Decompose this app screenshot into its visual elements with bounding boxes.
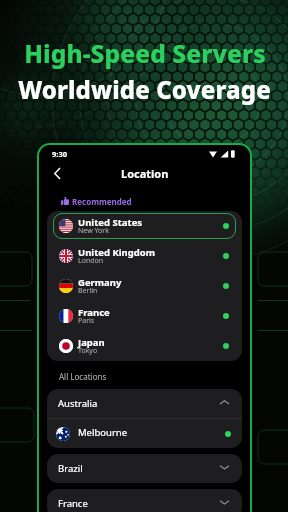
button[interactable]: Brazil: [47, 454, 242, 483]
staticText: Australia: [58, 397, 98, 410]
button[interactable]: France: [53, 303, 236, 329]
staticText: Japan: [78, 336, 105, 349]
staticText: France: [78, 306, 110, 319]
button[interactable]: Back: [48, 164, 66, 182]
staticText: High-Speed Servers: [24, 37, 266, 70]
staticText: Berlin: [78, 286, 98, 296]
staticText: New York: [78, 226, 109, 236]
button[interactable]: France: [47, 489, 242, 512]
staticText: Germany: [78, 276, 122, 289]
button[interactable]: United Kingdom: [53, 243, 236, 269]
staticText: Brazil: [58, 462, 83, 475]
staticText: Location: [121, 166, 169, 181]
staticText: Paris: [78, 316, 95, 326]
staticText: Worldwide Coverage: [18, 73, 271, 106]
staticText: United States: [78, 216, 143, 229]
button[interactable]: United States: [53, 213, 236, 239]
button[interactable]: Australia: [47, 389, 242, 418]
staticText: United Kingdom: [78, 246, 155, 259]
staticText: 9:30: [52, 149, 67, 159]
button[interactable]: Melbourne: [47, 419, 242, 448]
staticText: Tokyo: [78, 346, 98, 356]
button[interactable]: Germany: [53, 273, 236, 299]
staticText: Recommended: [72, 196, 132, 207]
staticText: All Locations: [59, 371, 107, 382]
button[interactable]: Japan: [53, 333, 236, 359]
staticText: France: [58, 497, 88, 510]
staticText: London: [78, 256, 104, 266]
staticText: Melbourne: [78, 426, 128, 439]
